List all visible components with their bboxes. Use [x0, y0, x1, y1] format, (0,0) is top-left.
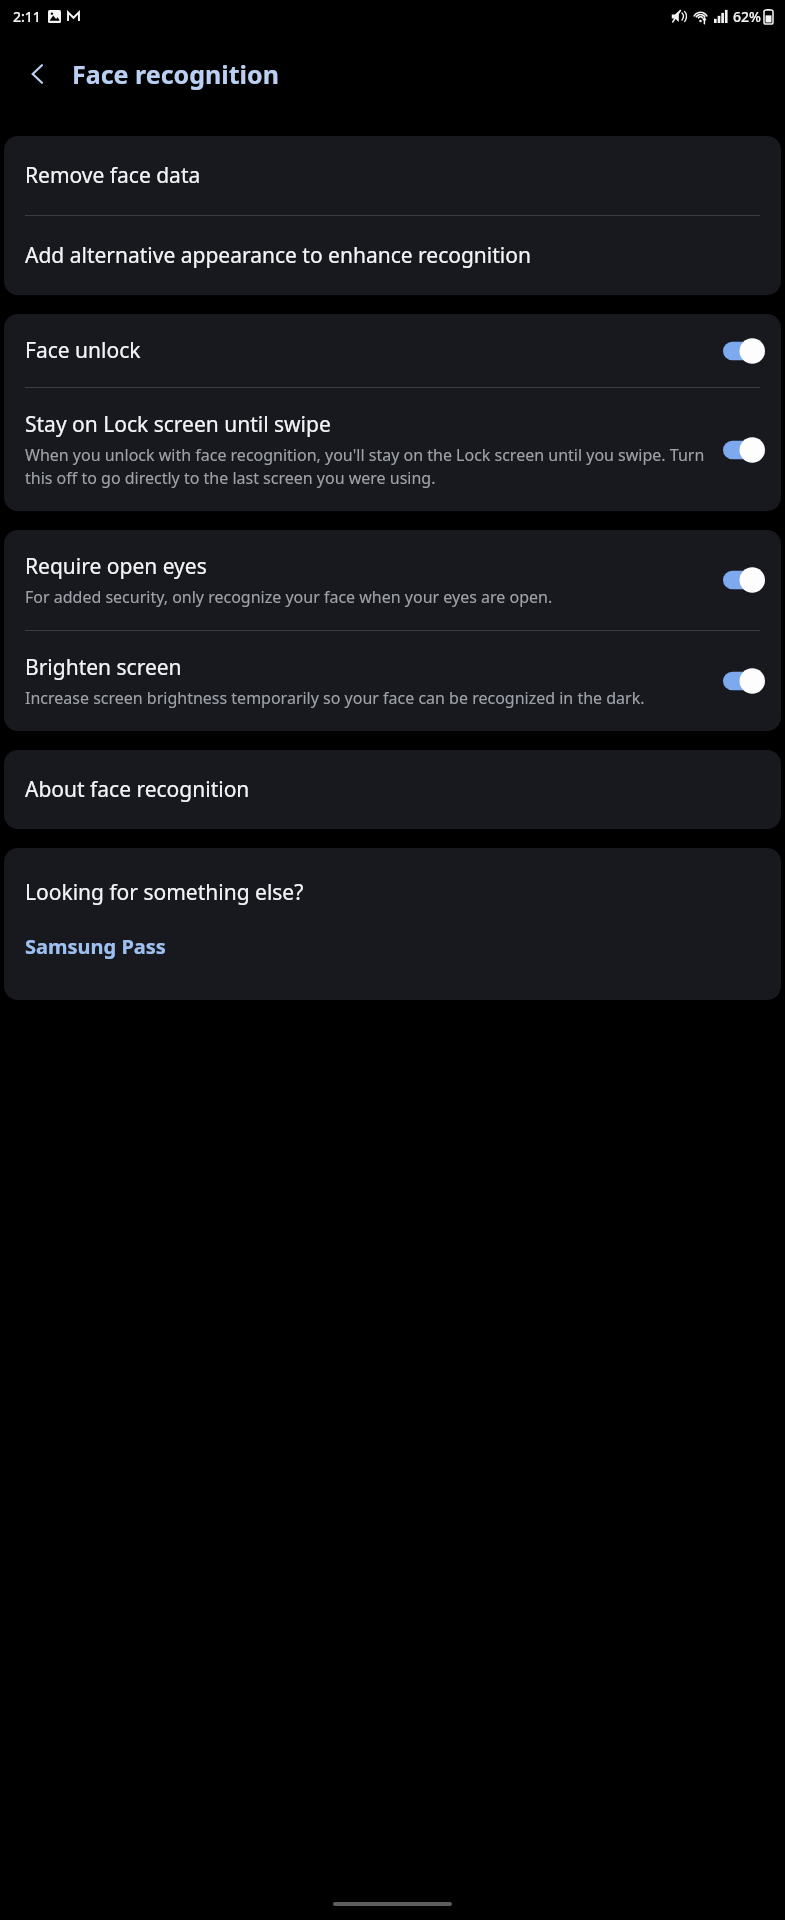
button[interactable]: Back — [14, 50, 62, 98]
staticText: Remove face data — [25, 161, 201, 190]
staticText: Looking for something else? — [25, 878, 304, 907]
staticText: When you unlock with face recognition, y… — [25, 444, 711, 489]
staticText: About face recognition — [25, 775, 250, 804]
staticText: Samsung Pass — [25, 933, 166, 960]
button[interactable]: Remove face data — [4, 136, 781, 215]
staticText: 2:11 — [13, 7, 41, 26]
button[interactable]: Toggle — [723, 668, 765, 694]
staticText: Add alternative appearance to enhance re… — [25, 241, 531, 270]
staticText: Stay on Lock screen until swipe — [25, 410, 331, 439]
staticText: For added security, only recognize your … — [25, 586, 553, 608]
staticText: 62% — [733, 7, 761, 26]
button[interactable]: Toggle — [723, 567, 765, 593]
button[interactable]: Samsung Pass — [25, 933, 166, 960]
button[interactable]: Require open eyes — [4, 530, 781, 630]
button[interactable]: Toggle — [723, 338, 765, 364]
staticText: Require open eyes — [25, 552, 207, 581]
button[interactable]: Face unlock — [4, 314, 781, 387]
staticText: Face unlock — [25, 336, 141, 365]
button[interactable]: Add alternative appearance to enhance re… — [4, 216, 781, 295]
staticText: Increase screen brightness temporarily s… — [25, 687, 645, 709]
button[interactable]: Toggle — [723, 437, 765, 463]
staticText: Brighten screen — [25, 653, 182, 682]
button[interactable]: Stay on Lock screen until swipe — [4, 388, 781, 511]
button[interactable]: About face recognition — [4, 750, 781, 829]
staticText: Face recognition — [72, 57, 279, 91]
button[interactable]: Brighten screen — [4, 631, 781, 731]
